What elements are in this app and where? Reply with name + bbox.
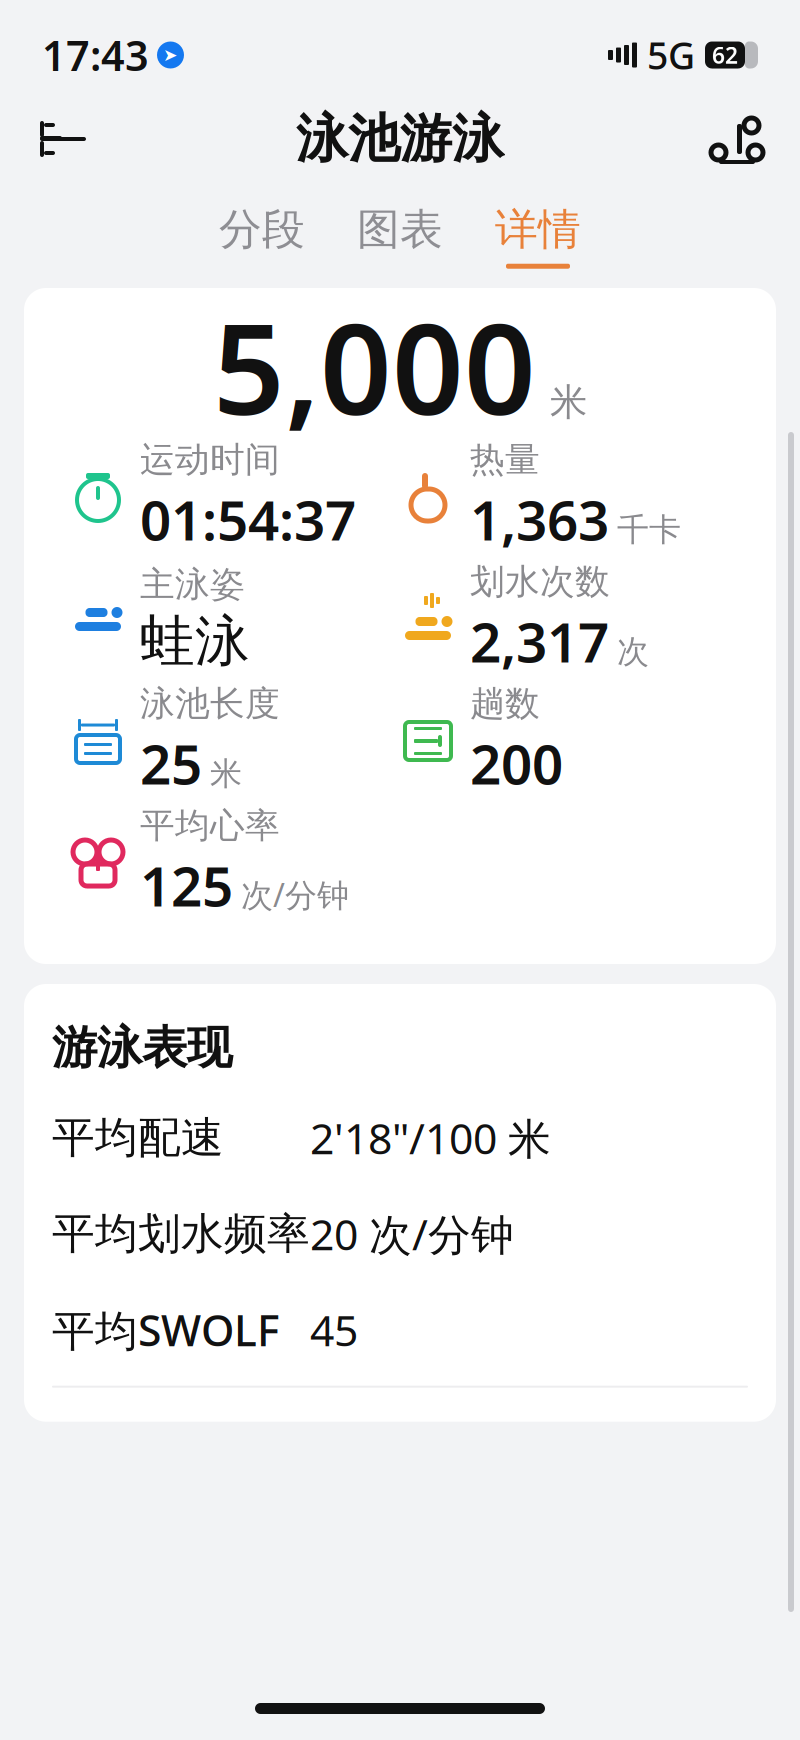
staticText: 米 [210, 754, 242, 793]
staticText: 17:43 [42, 28, 149, 82]
staticText: 1,363 [470, 483, 609, 556]
staticText: 25 [140, 727, 202, 800]
staticText: 5,000 [213, 283, 536, 449]
staticText: 平均划水频率 [52, 1207, 310, 1260]
staticText: 20 次/分钟 [310, 1205, 514, 1262]
staticText: 次 [617, 632, 649, 671]
staticText: 蛙泳 [140, 608, 250, 675]
staticText: 5G [647, 30, 695, 80]
staticText: 划水次数 [470, 560, 610, 603]
staticText: ➤ [163, 45, 178, 65]
staticText: 01:54:37 [140, 483, 356, 556]
staticText: 200 [470, 727, 563, 800]
button[interactable]: 详情 [483, 197, 593, 275]
staticText: 热量 [470, 438, 540, 481]
staticText: 2'18"/100 米 [310, 1109, 551, 1166]
button[interactable]: 返回 [20, 103, 106, 175]
staticText: 平均心率 [140, 804, 280, 847]
staticText: 分段 [219, 203, 305, 256]
staticText: 千卡 [617, 510, 681, 549]
staticText: 45 [310, 1301, 358, 1358]
staticText: 125 [140, 849, 233, 922]
staticText: 次/分钟 [241, 873, 349, 916]
staticText: 2,317 [470, 605, 609, 678]
staticText: 详情 [495, 203, 581, 256]
staticText: 平均配速 [52, 1111, 224, 1164]
staticText: 62 [712, 40, 738, 70]
staticText: 泳池长度 [140, 682, 280, 725]
staticText: 平均SWOLF [52, 1301, 280, 1358]
staticText: 图表 [357, 203, 443, 256]
staticText: 趟数 [470, 682, 540, 725]
staticText: 运动时间 [140, 438, 280, 481]
button[interactable]: 分段 [207, 197, 317, 275]
staticText: 泳池游泳 [296, 107, 504, 171]
button[interactable]: 分享 [694, 103, 780, 175]
staticText: 游泳表现 [52, 1020, 232, 1076]
button[interactable]: 图表 [345, 197, 455, 275]
staticText: 主泳姿 [140, 563, 245, 606]
staticText: 米 [550, 379, 587, 425]
